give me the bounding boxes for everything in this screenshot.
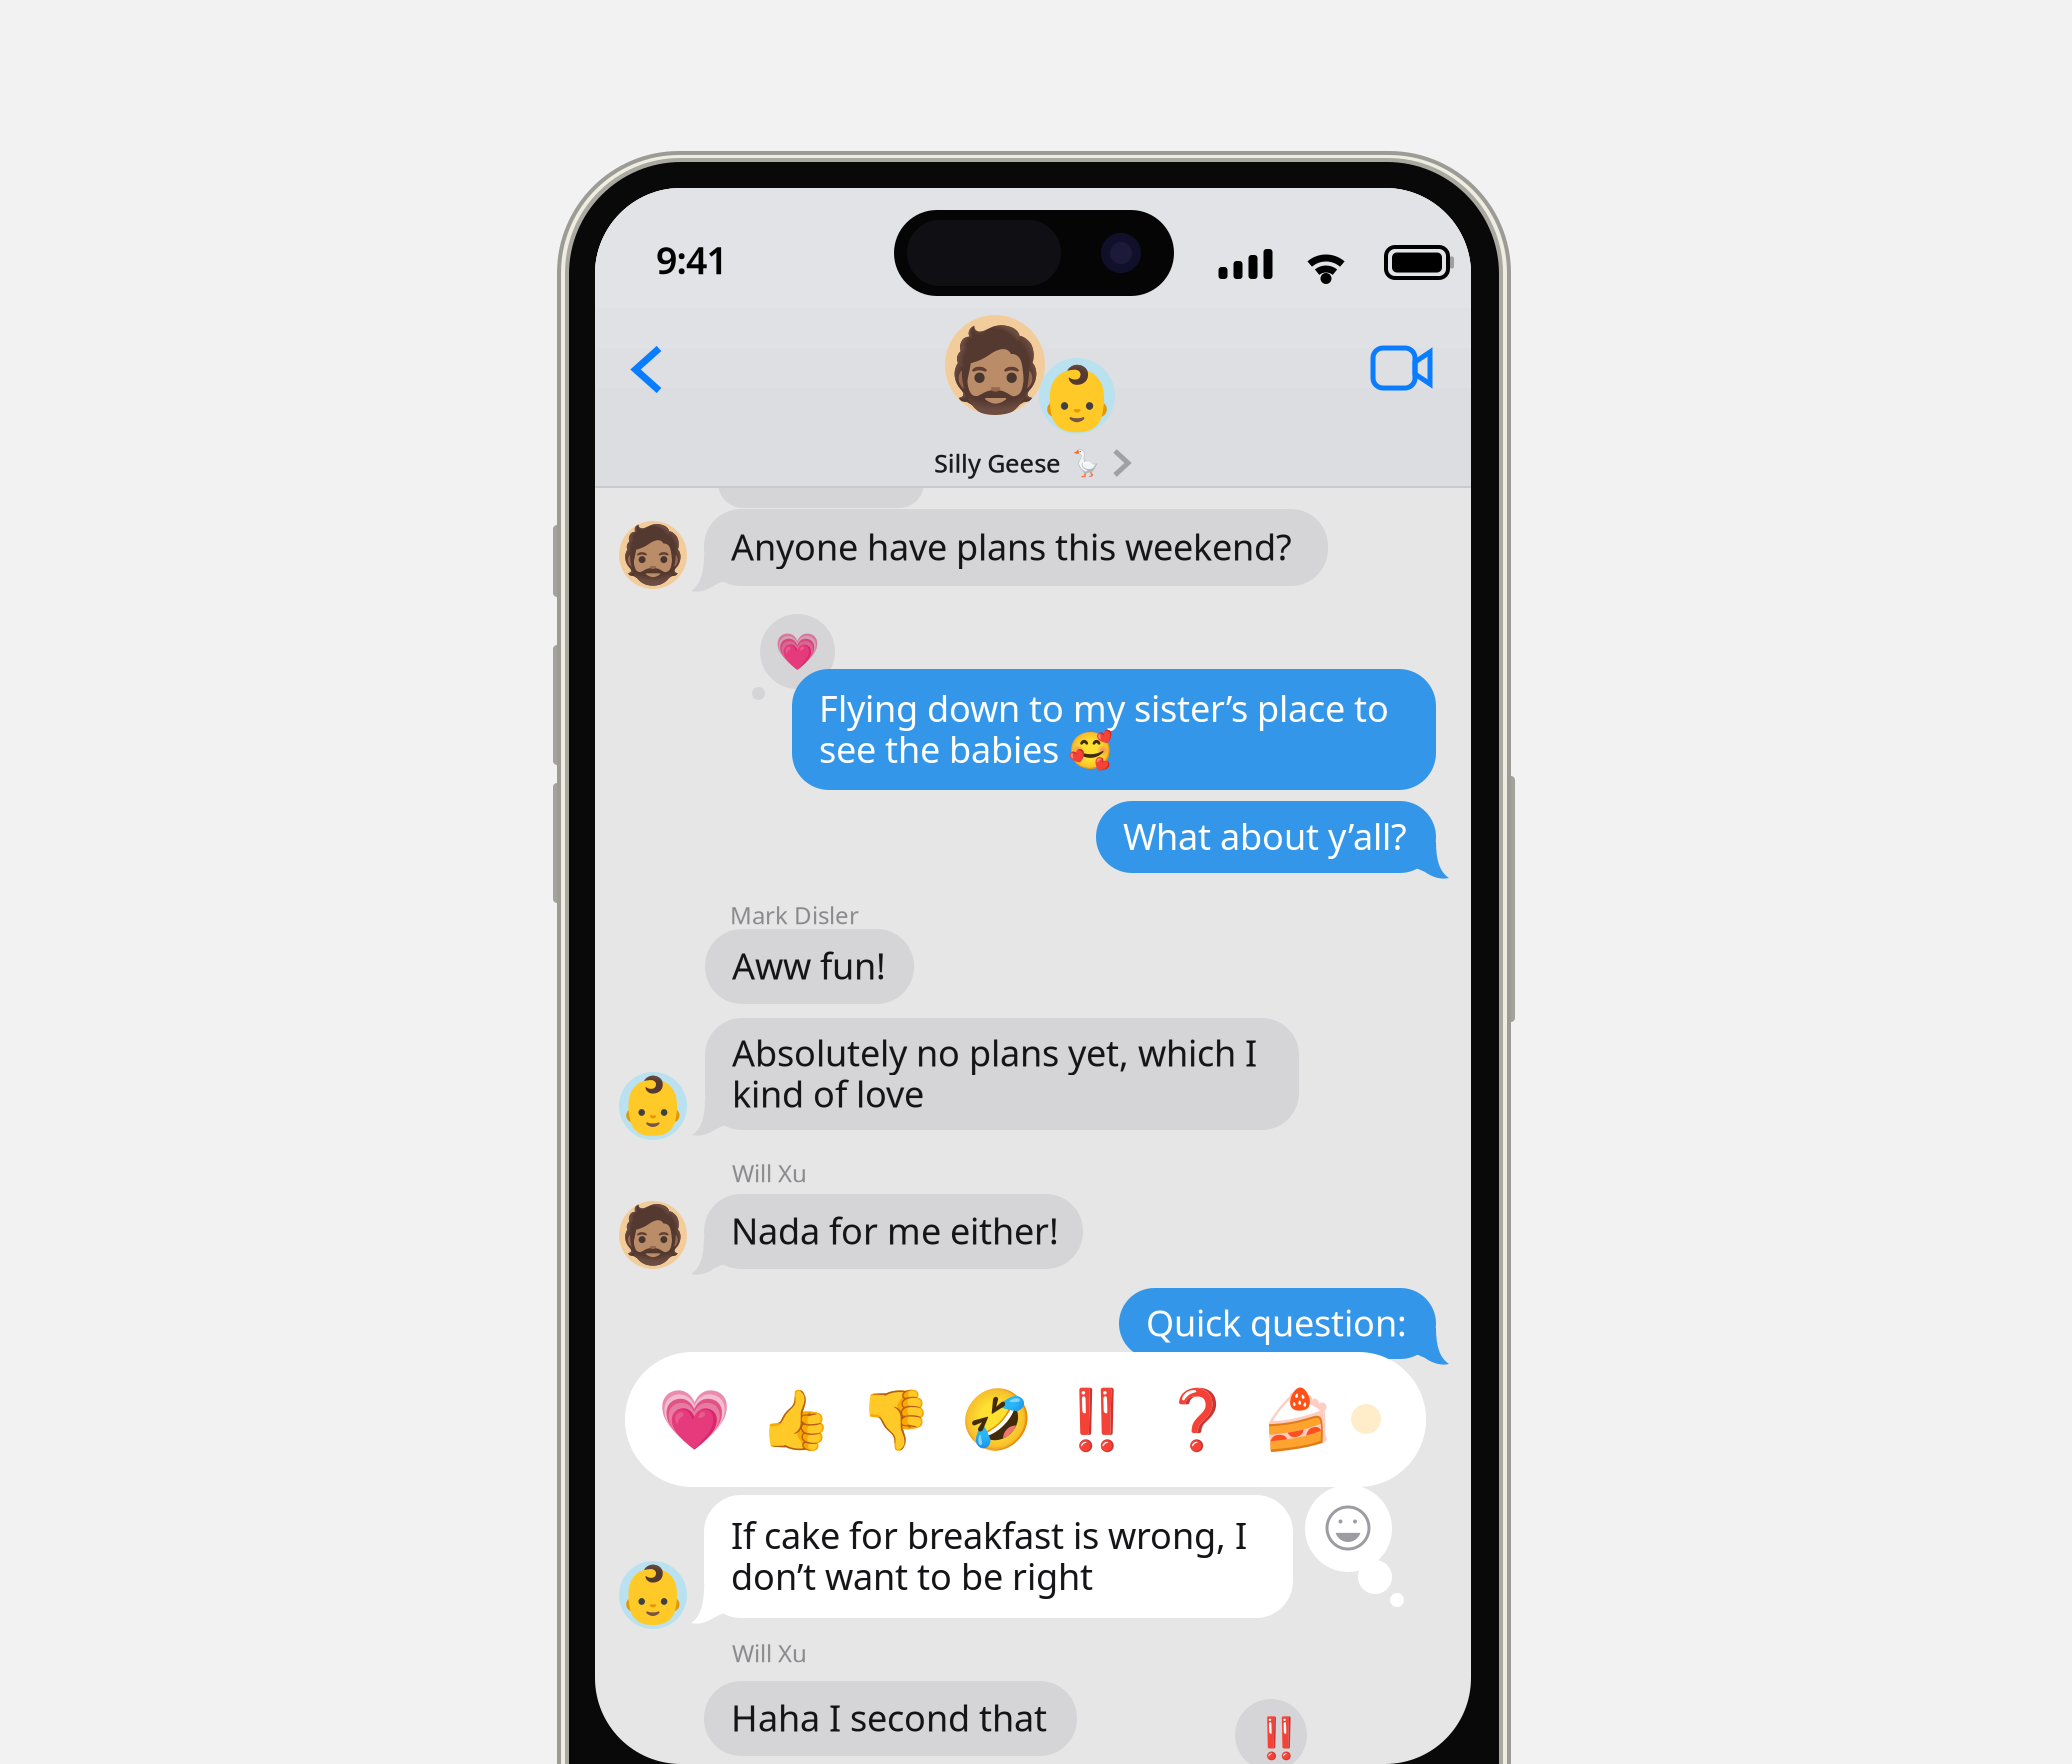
button[interactable]: 🧔🏽 bbox=[595, 188, 1471, 487]
staticText: What about y’all? bbox=[1123, 812, 1407, 860]
staticText: ‼️ bbox=[1254, 1715, 1304, 1761]
staticText: Nada for me either! bbox=[731, 1207, 1059, 1254]
button[interactable]: What about y’all? bbox=[1096, 801, 1436, 873]
staticText: 💗 bbox=[658, 1386, 731, 1453]
staticText: 9:41 bbox=[656, 235, 727, 285]
staticText: Haha I second that bbox=[731, 1694, 1047, 1741]
staticText: 🪿 bbox=[1070, 448, 1102, 477]
staticText: ❓ bbox=[1160, 1386, 1233, 1453]
staticText: Flying down to my sister’s place to bbox=[819, 684, 1389, 732]
staticText: 👍 bbox=[758, 1386, 831, 1453]
staticText: Will Xu bbox=[732, 1637, 807, 1669]
staticText: If cake for breakfast is wrong, I bbox=[731, 1511, 1247, 1559]
staticText: Aww fun! bbox=[732, 942, 886, 989]
staticText: 👎 bbox=[859, 1386, 932, 1453]
staticText: Anyone have plans this weekend? bbox=[731, 523, 1292, 570]
staticText: Will Xu bbox=[732, 1157, 807, 1189]
staticText: 👶 bbox=[618, 1563, 688, 1627]
staticText: 🧔🏽 bbox=[943, 324, 1046, 418]
button[interactable]: Aww fun! bbox=[705, 929, 914, 1004]
staticText: Mark Disler bbox=[730, 899, 859, 931]
staticText: don’t want to be right bbox=[731, 1552, 1093, 1600]
button[interactable]: Tapback reactions bbox=[625, 1352, 1426, 1487]
staticText: 🤣 bbox=[959, 1386, 1032, 1453]
button[interactable]: Flying down to my sister’s place to bbox=[792, 669, 1436, 790]
button[interactable]: Nada for me either! bbox=[704, 1194, 1083, 1269]
button[interactable]: Back bbox=[604, 317, 690, 422]
staticText: see the babies 🥰 bbox=[819, 725, 1113, 773]
staticText: Absolutely no plans yet, which I bbox=[732, 1029, 1257, 1076]
staticText: 🧔🏽 bbox=[618, 523, 688, 587]
button[interactable]: If cake for breakfast is wrong, I bbox=[704, 1495, 1293, 1618]
staticText: 💗 bbox=[775, 631, 820, 672]
staticText: Quick question: bbox=[1146, 1299, 1407, 1346]
button[interactable]: FaceTime video call bbox=[1345, 320, 1460, 416]
staticText: kind of love bbox=[732, 1070, 924, 1117]
staticText: 🍰 bbox=[1261, 1386, 1334, 1453]
staticText: ‼️ bbox=[1060, 1386, 1133, 1453]
staticText: 👶 bbox=[1038, 363, 1116, 435]
staticText: 👶 bbox=[618, 1074, 688, 1138]
staticText: Silly Geese bbox=[934, 446, 1061, 480]
button[interactable]: Absolutely no plans yet, which I bbox=[705, 1018, 1299, 1130]
button[interactable]: Haha I second that bbox=[704, 1681, 1077, 1756]
button[interactable]: Anyone have plans this weekend? bbox=[704, 509, 1328, 586]
button[interactable]: Quick question: bbox=[1119, 1288, 1436, 1359]
staticText: 🧔🏽 bbox=[618, 1203, 688, 1267]
